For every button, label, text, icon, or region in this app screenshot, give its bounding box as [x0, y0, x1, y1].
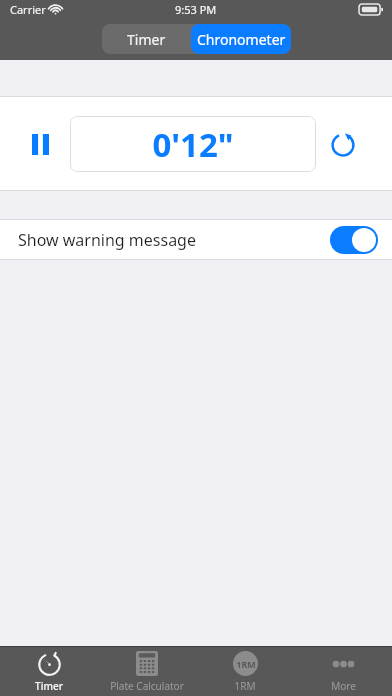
staticText: 1RM: [236, 658, 256, 670]
button[interactable]: 1RM: [196, 647, 294, 696]
staticText: Plate Calculator: [110, 679, 184, 693]
staticText: Timer: [35, 679, 63, 693]
staticText: Chronometer: [197, 30, 286, 49]
staticText: 0'12": [152, 122, 234, 167]
button[interactable]: Chronometer: [191, 24, 291, 54]
staticText: 1RM: [234, 679, 256, 693]
staticText: More: [331, 679, 356, 693]
button[interactable]: Plate Calculator: [98, 647, 196, 696]
staticText: Carrier: [10, 2, 46, 17]
staticText: Timer: [127, 30, 166, 49]
button[interactable]: Timer: [102, 24, 191, 54]
button[interactable]: Timer: [0, 647, 98, 696]
button[interactable]: Reset: [322, 123, 364, 165]
button[interactable]: More: [294, 647, 392, 696]
button[interactable]: Pause: [18, 122, 62, 166]
button[interactable]: 0'12": [70, 116, 316, 172]
button[interactable]: Show warning message: [0, 220, 392, 259]
staticText: 9:53 PM: [175, 2, 217, 17]
staticText: Show warning message: [18, 229, 196, 251]
button[interactable]: Show warning message toggle: [330, 226, 378, 254]
